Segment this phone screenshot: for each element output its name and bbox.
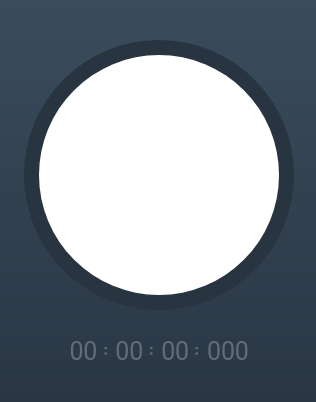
staticText: 00 : 00 : 00 : 000 [1,337,316,366]
button[interactable]: Start stopwatch [24,40,294,310]
